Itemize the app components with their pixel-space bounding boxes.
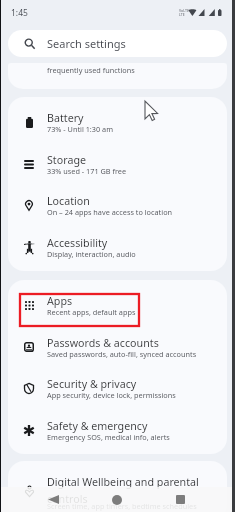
- staticText: On – 24 apps have access to location: [47, 207, 173, 217]
- button[interactable]: Digital Wellbeing and parental controls: [8, 465, 227, 512]
- staticText: Apps: [47, 294, 73, 309]
- staticText: frequently used functions: [47, 65, 135, 75]
- staticText: Safety & emergency: [47, 419, 148, 434]
- staticText: Battery: [47, 111, 84, 126]
- button[interactable]: Safety & emergency: [8, 409, 227, 451]
- button[interactable]: Storage: [8, 143, 227, 185]
- button[interactable]: Apps: [8, 284, 227, 326]
- staticText: Digital Wellbeing and parental controls: [47, 475, 199, 506]
- button[interactable]: Location: [8, 184, 227, 226]
- button[interactable]: Home: [104, 487, 129, 512]
- button[interactable]: Back: [41, 487, 66, 512]
- staticText: Display, interaction, audio: [47, 249, 136, 259]
- staticText: Screen time, app timers, bedtime schedul…: [47, 501, 197, 511]
- staticText: Saved passwords, auto-fill, synced accou…: [47, 349, 197, 359]
- staticText: Recent apps, default apps: [47, 307, 136, 317]
- staticText: LTE: [179, 12, 185, 17]
- button[interactable]: Accessibility: [8, 226, 227, 268]
- staticText: VoLTE: [179, 8, 190, 13]
- button[interactable]: Recent apps: [168, 487, 193, 512]
- staticText: Storage: [47, 153, 86, 168]
- staticText: 73% - Until 1:30 am: [47, 124, 113, 134]
- button[interactable]: Search settings: [8, 30, 227, 57]
- staticText: 33% used - 171 GB free: [47, 166, 127, 176]
- staticText: App security, device lock, permissions: [47, 390, 176, 400]
- staticText: Search settings: [47, 36, 126, 51]
- staticText: Location: [47, 194, 90, 209]
- staticText: Emergency SOS, medical info, alerts: [47, 432, 170, 442]
- button[interactable]: Security & privacy: [8, 367, 227, 409]
- staticText: 1:45: [11, 7, 28, 19]
- staticText: Security & privacy: [47, 377, 137, 392]
- staticText: Passwords & accounts: [47, 336, 159, 351]
- button[interactable]: Battery: [8, 101, 227, 143]
- staticText: Accessibility: [47, 236, 108, 251]
- button[interactable]: Passwords & accounts: [8, 326, 227, 368]
- button[interactable]: frequently used functions: [8, 63, 227, 89]
